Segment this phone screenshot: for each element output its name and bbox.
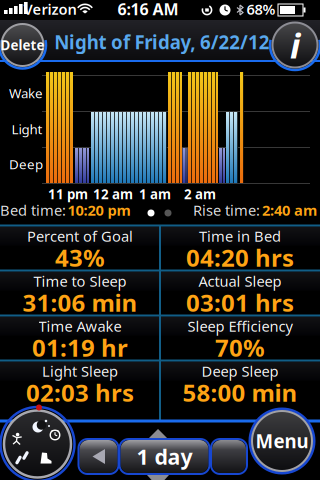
staticText: Light — [11, 120, 42, 138]
staticText: 68% — [246, 0, 275, 19]
staticText: 1 day — [136, 442, 192, 471]
staticText: i — [290, 22, 300, 68]
staticText: 58:00 min — [182, 377, 297, 408]
button[interactable]: 1 day — [119, 439, 209, 474]
staticText: Wake — [9, 84, 43, 102]
staticText: 2 am — [184, 185, 216, 203]
staticText: 70% — [215, 332, 265, 363]
staticText: 02:03 hrs — [26, 377, 134, 408]
staticText: 43% — [55, 242, 105, 273]
button[interactable] — [78, 439, 118, 474]
button[interactable]: Delete — [1, 24, 43, 66]
staticText: Night of Friday, 6/22/12 — [54, 30, 270, 54]
staticText: 6:16 AM — [117, 0, 178, 20]
staticText: Delete — [0, 36, 44, 54]
staticText: 31:06 min — [22, 287, 137, 318]
staticText: Sleep Efficiency — [187, 316, 292, 336]
staticText: 04:20 hrs — [186, 242, 294, 273]
staticText: 12 am — [93, 185, 133, 203]
staticText: 10:20 pm — [67, 200, 130, 220]
staticText: Time Awake — [38, 316, 121, 336]
staticText: Bed time: — [0, 200, 66, 220]
button[interactable] — [0, 396, 78, 480]
staticText: Time in Bed — [199, 226, 281, 246]
staticText: Deep — [9, 155, 43, 173]
staticText: 1 am — [139, 185, 171, 203]
staticText: Rise time: — [193, 200, 260, 220]
button[interactable] — [211, 439, 247, 474]
button[interactable]: Menu — [250, 409, 314, 473]
staticText: Time to Sleep — [33, 271, 126, 291]
staticText: 01:19 hr — [32, 332, 128, 363]
staticText: Light Sleep — [42, 361, 118, 381]
staticText: Actual Sleep — [198, 271, 281, 291]
staticText: Percent of Goal — [27, 226, 133, 246]
staticText: 03:01 hrs — [186, 287, 294, 318]
staticText: Deep Sleep — [201, 361, 278, 381]
button[interactable]: i — [272, 22, 317, 67]
staticText: 11 pm — [48, 185, 88, 203]
staticText: Verizon — [23, 0, 76, 19]
staticText: 2:40 am — [262, 200, 317, 220]
staticText: Menu — [255, 429, 308, 453]
